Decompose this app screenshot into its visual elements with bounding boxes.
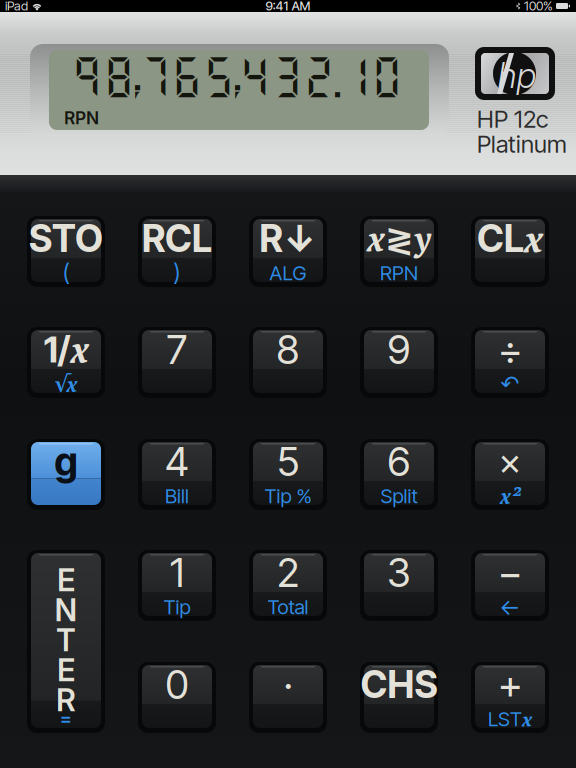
staticText: + — [498, 660, 522, 709]
staticText: x² — [500, 482, 520, 510]
staticText: T — [56, 621, 76, 658]
staticText: 0 — [165, 660, 188, 709]
staticText: iPad — [5, 0, 28, 14]
staticText: RCL — [142, 216, 212, 261]
button[interactable]: 9 — [360, 327, 438, 398]
button[interactable]: + — [471, 662, 549, 733]
button[interactable]: × — [471, 439, 549, 510]
staticText: 9:41 AM — [265, 0, 310, 14]
staticText: RPN — [64, 107, 99, 128]
staticText: 2 — [277, 548, 299, 597]
staticText: Bill — [165, 484, 189, 508]
staticText: E — [57, 651, 75, 688]
staticText: √x — [54, 370, 77, 398]
staticText: − — [498, 548, 522, 597]
staticText: Split — [380, 484, 417, 508]
staticText: ↶ — [500, 371, 519, 397]
staticText: g — [54, 438, 77, 485]
staticText: RPN — [380, 261, 418, 285]
button[interactable]: CL — [471, 216, 549, 287]
staticText: Tip % — [264, 484, 311, 508]
button[interactable]: 0 — [138, 662, 216, 733]
staticText: R↓ — [259, 216, 316, 261]
button[interactable]: · — [249, 662, 327, 733]
staticText: x — [522, 706, 532, 732]
button[interactable]: STO — [27, 216, 105, 287]
staticText: ( — [62, 259, 69, 287]
staticText: LST — [488, 707, 522, 731]
button[interactable]: ÷ — [471, 327, 549, 398]
staticText: 7 — [166, 325, 187, 374]
button[interactable]: 8 — [249, 327, 327, 398]
staticText: HP 12c — [477, 104, 548, 133]
button[interactable]: Enter — [27, 550, 105, 733]
button[interactable]: 5 — [249, 439, 327, 510]
staticText: Platinum — [477, 129, 567, 158]
staticText: = — [59, 707, 72, 729]
button[interactable]: 7 — [138, 327, 216, 398]
button[interactable]: x≷y — [360, 216, 438, 287]
staticText: ) — [173, 259, 180, 287]
staticText: 100% — [524, 0, 553, 14]
staticText: ← — [499, 593, 520, 621]
button[interactable]: g — [27, 439, 105, 510]
staticText: 1 — [170, 548, 184, 597]
staticText: E — [57, 561, 75, 598]
staticText: Total — [267, 595, 308, 619]
button[interactable]: CHS — [360, 662, 438, 733]
staticText: CHS — [360, 662, 437, 707]
staticText: 3 — [387, 548, 411, 597]
button[interactable]: 1 — [138, 550, 216, 621]
button[interactable]: 6 — [360, 439, 438, 510]
staticText: × — [498, 439, 521, 484]
staticText: 5 — [277, 437, 299, 486]
button[interactable]: 1/ — [27, 327, 105, 398]
button[interactable]: R↓ — [249, 216, 327, 287]
button[interactable]: RCL — [138, 216, 216, 287]
staticText: N — [54, 591, 77, 628]
staticText: 1/ — [43, 328, 70, 371]
staticText: ÷ — [498, 325, 522, 374]
button[interactable]: 3 — [360, 550, 438, 621]
staticText: 98,765,432.10 — [71, 50, 403, 102]
staticText: Tip — [163, 595, 190, 619]
staticText: 8 — [276, 325, 299, 374]
button[interactable]: − — [471, 550, 549, 621]
staticText: hp — [497, 54, 536, 96]
button[interactable]: 2 — [249, 550, 327, 621]
staticText: 6 — [387, 437, 410, 486]
staticText: R — [56, 681, 76, 718]
staticText: CL — [477, 216, 524, 261]
staticText: x — [70, 325, 88, 373]
staticText: ALG — [269, 261, 306, 285]
button[interactable]: 4 — [138, 439, 216, 510]
staticText: x — [524, 214, 543, 263]
staticText: x≷y — [367, 215, 431, 261]
staticText: · — [283, 660, 292, 709]
staticText: 9 — [387, 325, 410, 374]
staticText: STO — [29, 216, 103, 261]
staticText: 4 — [165, 437, 189, 486]
